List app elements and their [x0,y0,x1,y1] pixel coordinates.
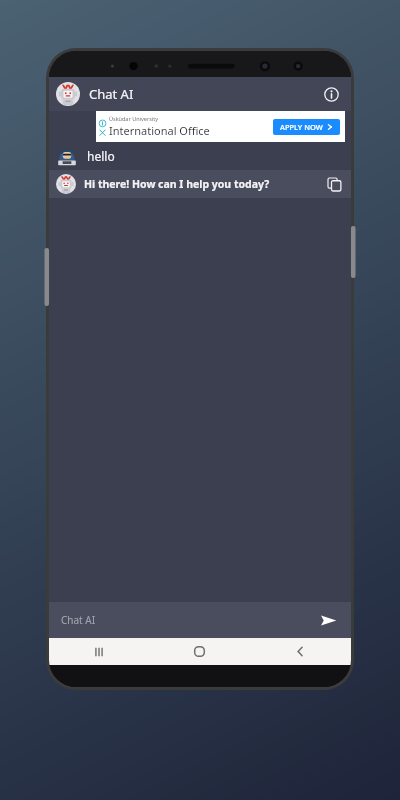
button[interactable]: Hi there! How can I help you today? [49,170,351,198]
button[interactable]: Üsküdar University [96,111,345,142]
button[interactable]: Send [315,607,341,633]
button[interactable]: Chat AI [61,602,315,638]
staticText: APPLY NOW [280,122,323,132]
staticText: International Office [109,123,210,138]
staticText: Chat AI [61,613,96,627]
button[interactable]: Chat AI [49,77,351,111]
staticText: Üsküdar University [109,115,159,122]
button[interactable]: APPLY NOW [273,119,340,135]
button[interactable]: Copy message [323,173,345,195]
button[interactable]: Info [318,81,344,107]
button[interactable]: hello [49,142,351,170]
staticText: Chat AI [89,85,134,103]
staticText: Hi there! How can I help you today? [84,177,270,191]
button[interactable]: Back [250,638,351,665]
button[interactable]: Home [149,638,250,665]
button[interactable]: Recent apps [49,638,149,665]
staticText: hello [87,148,115,164]
